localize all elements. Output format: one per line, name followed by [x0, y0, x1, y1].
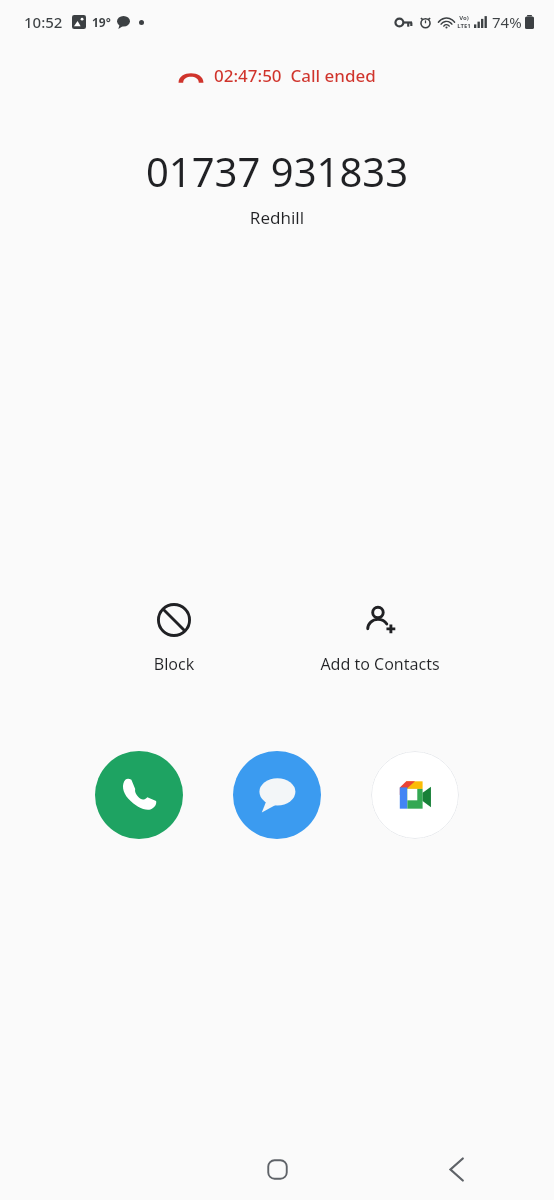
- button[interactable]: Message: [233, 751, 321, 839]
- button[interactable]: Home: [253, 1145, 301, 1193]
- button[interactable]: Call: [95, 751, 183, 839]
- button[interactable]: Back: [432, 1145, 480, 1193]
- staticText: Block: [99, 653, 249, 675]
- other: Block: [157, 603, 191, 637]
- staticText: 02:47:50 Call ended: [214, 64, 376, 87]
- staticText: Vo): [459, 14, 469, 22]
- button[interactable]: Add to Contacts: [305, 599, 455, 679]
- button[interactable]: Video call with Google Meet: [371, 751, 459, 839]
- other: Add to Contacts: [363, 603, 397, 637]
- staticText: Add to Contacts: [305, 653, 455, 675]
- staticText: LTE1: [457, 22, 471, 30]
- button[interactable]: Block: [99, 599, 249, 679]
- staticText: Redhill: [0, 206, 554, 229]
- staticText: 74%: [492, 12, 522, 32]
- staticText: 01737 931833: [0, 144, 554, 198]
- staticText: 10:52: [24, 12, 63, 32]
- staticText: 19°: [92, 14, 111, 30]
